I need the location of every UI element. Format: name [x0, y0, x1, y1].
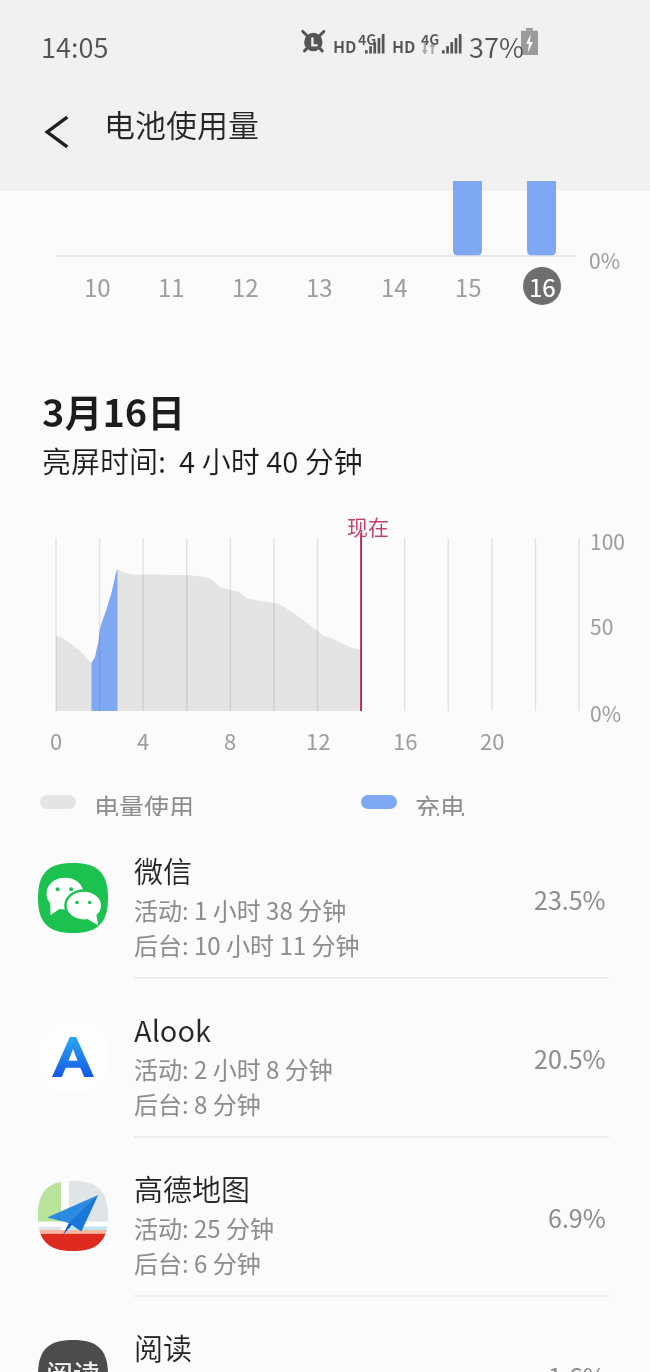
button[interactable]: 充电 — [361, 788, 466, 816]
staticText: 12 — [306, 724, 331, 756]
button[interactable]: Alook — [0, 979, 650, 1138]
staticText: HD — [392, 34, 416, 57]
staticText: 后台: 8 分钟 — [134, 1086, 261, 1121]
staticText: 11 — [158, 269, 185, 304]
button[interactable]: 微信 — [0, 820, 650, 979]
button[interactable]: 14 — [375, 267, 413, 305]
staticText: 14:05 — [41, 27, 109, 66]
staticText: 阅读 — [134, 1326, 193, 1368]
button[interactable]: 13 — [300, 267, 338, 305]
staticText: 阅读 — [46, 1354, 100, 1372]
button[interactable]: 高德地图 — [0, 1138, 650, 1297]
staticText: 8 — [224, 724, 237, 756]
staticText: 12 — [232, 269, 259, 304]
staticText: 4 — [137, 724, 150, 756]
staticText: 3月16日 — [42, 383, 186, 438]
staticText: HD — [333, 34, 357, 57]
staticText: Alook — [134, 1008, 212, 1050]
staticText: 后台: 6 分钟 — [134, 1245, 261, 1280]
staticText: 100 — [590, 526, 625, 556]
staticText: 电量使用 — [94, 788, 195, 816]
staticText: 活动: 1 小时 38 分钟 — [134, 892, 347, 927]
staticText: 20 — [480, 724, 505, 756]
staticText: 0% — [589, 245, 620, 275]
staticText: 14 — [381, 269, 408, 304]
staticText: 微信 — [134, 849, 193, 891]
staticText: 后台: 10 小时 11 分钟 — [134, 927, 360, 962]
staticText: 50 — [590, 611, 614, 641]
button[interactable]: 阅读 — [0, 1297, 650, 1372]
staticText: 37% — [469, 27, 524, 66]
button[interactable]: 电量使用 — [40, 788, 195, 816]
staticText: 4G — [358, 29, 377, 49]
staticText: 1.6% — [548, 1358, 606, 1372]
staticText: 活动: 25 分钟 — [134, 1210, 275, 1245]
button[interactable]: 15 — [449, 267, 487, 305]
staticText: 活动: 2 小时 8 分钟 — [134, 1051, 333, 1086]
staticText: 0% — [590, 698, 621, 728]
staticText: 6.9% — [548, 1199, 606, 1233]
staticText: 现在 — [347, 511, 389, 541]
staticText: 0 — [50, 724, 63, 756]
button[interactable]: 10 — [78, 267, 116, 305]
staticText: 15 — [455, 269, 482, 304]
staticText: 13 — [306, 269, 333, 304]
button[interactable]: 11 — [152, 267, 190, 305]
staticText: 4G — [421, 29, 440, 49]
staticText: 10 — [84, 269, 111, 304]
staticText: 20.5% — [534, 1040, 606, 1074]
button[interactable]: Back — [18, 90, 94, 174]
button[interactable]: 16 — [523, 267, 561, 305]
staticText: 16 — [529, 269, 556, 304]
staticText: 16 — [393, 724, 418, 756]
staticText: 充电 — [415, 788, 466, 816]
staticText: 电池使用量 — [104, 101, 259, 146]
button[interactable]: 12 — [226, 267, 264, 305]
staticText: 23.5% — [534, 881, 606, 915]
staticText: 亮屏时间: 4 小时 40 分钟 — [42, 439, 363, 481]
staticText: 高德地图 — [134, 1167, 251, 1209]
